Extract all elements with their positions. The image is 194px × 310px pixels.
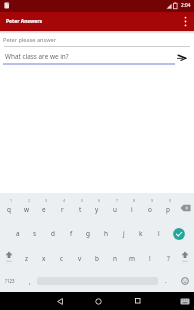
button[interactable]	[176, 269, 194, 292]
staticText: u	[113, 205, 117, 214]
button[interactable]	[176, 196, 194, 220]
button[interactable]: .	[159, 269, 173, 291]
staticText: Peter Answers	[6, 18, 43, 25]
staticText: ,	[29, 277, 31, 286]
staticText: v	[78, 254, 82, 263]
staticText: 5	[81, 198, 84, 203]
staticText: b	[95, 254, 99, 263]
staticText: 9	[151, 198, 154, 203]
button[interactable]: e	[35, 197, 53, 221]
staticText: l	[158, 229, 160, 238]
button[interactable]: ,	[23, 270, 37, 292]
button[interactable]: d	[44, 221, 62, 245]
staticText: p	[166, 205, 170, 214]
button[interactable]: k	[132, 221, 150, 245]
staticText: z	[25, 254, 29, 263]
staticText: a	[16, 229, 20, 238]
button[interactable]: g	[79, 221, 97, 245]
button[interactable]: x	[35, 246, 53, 270]
button[interactable]: s	[26, 221, 44, 245]
staticText: x	[42, 254, 46, 263]
staticText: 7	[116, 198, 119, 203]
button[interactable]: b	[88, 246, 106, 270]
button[interactable]: o	[141, 197, 159, 221]
staticText: m	[129, 254, 135, 263]
staticText: c	[60, 254, 64, 263]
staticText: 8	[133, 198, 136, 203]
button[interactable]: u	[106, 197, 124, 221]
staticText: 6	[98, 198, 101, 203]
button[interactable]: m	[123, 246, 141, 270]
button[interactable]: p	[159, 197, 177, 221]
staticText: o	[148, 205, 152, 214]
button[interactable]: h	[97, 221, 115, 245]
staticText: g	[86, 229, 90, 238]
button[interactable]: r	[53, 197, 71, 221]
staticText: n	[113, 254, 117, 263]
staticText: ?	[167, 254, 170, 263]
button[interactable]: t	[71, 197, 89, 221]
button[interactable]	[0, 245, 18, 269]
staticText: i	[131, 205, 133, 214]
staticText: t	[79, 205, 82, 214]
button[interactable]: l	[150, 221, 168, 245]
button[interactable]: i	[123, 197, 141, 221]
staticText: 4	[63, 198, 66, 203]
button[interactable]	[0, 12, 194, 31]
button[interactable]	[175, 292, 194, 310]
button[interactable]: f	[62, 221, 80, 245]
staticText: 3	[45, 198, 48, 203]
staticText: k	[139, 229, 143, 238]
staticText: !	[149, 254, 151, 263]
button[interactable]	[86, 292, 110, 310]
staticText: 2:04	[181, 2, 191, 8]
staticText: .	[165, 276, 167, 285]
button[interactable]: n	[106, 246, 124, 270]
staticText: 2	[28, 198, 31, 203]
button[interactable]	[0, 269, 22, 292]
staticText: e	[42, 205, 46, 214]
button[interactable]	[3, 49, 175, 65]
button[interactable]	[3, 33, 191, 48]
button[interactable]: j	[115, 221, 133, 245]
button[interactable]: q	[0, 197, 18, 221]
button[interactable]	[176, 245, 194, 269]
button[interactable]: z	[18, 246, 36, 270]
button[interactable]	[126, 292, 150, 310]
button[interactable]: !	[141, 246, 159, 270]
button[interactable]: y	[88, 197, 106, 221]
staticText: s	[33, 229, 37, 238]
staticText: Peter please answer	[3, 36, 57, 44]
staticText: d	[51, 229, 55, 238]
button[interactable]	[179, 12, 191, 31]
staticText: j	[123, 229, 125, 238]
staticText: y	[95, 205, 99, 214]
button[interactable]: c	[53, 246, 71, 270]
staticText: 0	[169, 198, 172, 203]
staticText: 1	[10, 198, 13, 203]
button[interactable]: w	[18, 197, 36, 221]
staticText: r	[61, 205, 64, 214]
button[interactable]: v	[71, 246, 89, 270]
button[interactable]	[166, 221, 192, 245]
staticText: What class are we in?	[5, 52, 69, 61]
staticText: ?123	[5, 278, 15, 284]
staticText: w	[24, 205, 30, 214]
button[interactable]	[48, 292, 72, 310]
button[interactable]: a	[9, 221, 27, 245]
button[interactable]	[174, 51, 190, 65]
staticText: h	[104, 229, 108, 238]
staticText: f	[70, 229, 73, 238]
staticText: q	[7, 205, 11, 214]
button[interactable]: ?	[159, 246, 177, 270]
